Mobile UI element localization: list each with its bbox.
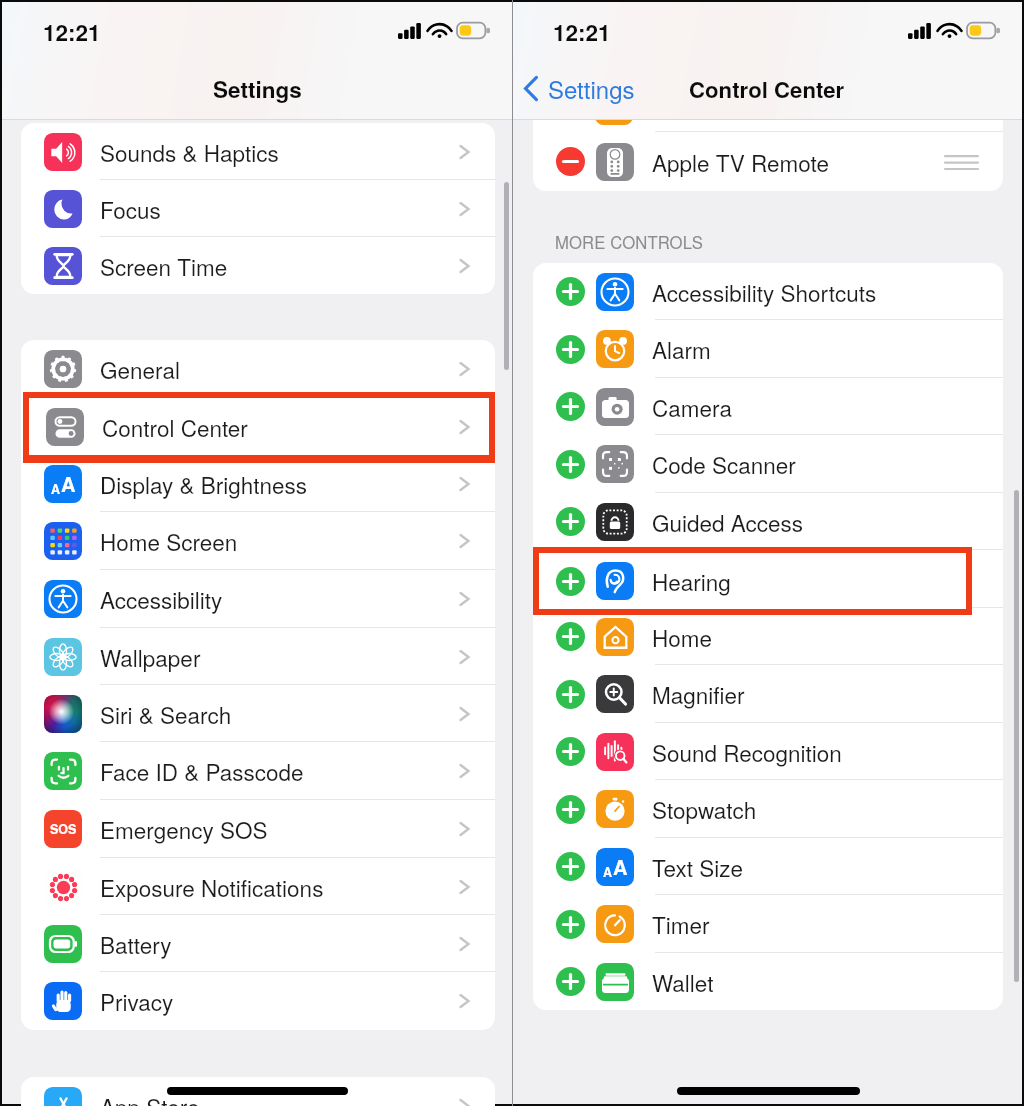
staticText: A — [603, 863, 613, 881]
button[interactable]: Exposure Notifications — [21, 858, 495, 915]
staticText: Settings — [548, 71, 635, 105]
button[interactable]: Add control — [533, 838, 1003, 895]
staticText: Control Center — [100, 411, 459, 443]
button[interactable]: Add control — [533, 435, 1003, 493]
staticText: Wallet — [652, 966, 983, 998]
staticText: Stopwatch — [652, 793, 983, 825]
staticText: Emergency SOS — [100, 813, 459, 845]
button[interactable]: Add control — [533, 953, 1003, 1010]
staticText: Text Size — [652, 851, 983, 883]
button[interactable]: Add control — [556, 910, 585, 939]
staticText: A — [51, 480, 61, 498]
staticText: Display & Brightness — [100, 468, 459, 500]
staticText: 12:21 — [43, 16, 101, 48]
button[interactable]: Add control — [533, 895, 1003, 953]
button[interactable]: Add control — [533, 547, 972, 615]
button[interactable]: Add control — [556, 277, 585, 306]
button[interactable]: Wallpaper — [21, 628, 495, 685]
button[interactable]: Add control — [533, 320, 1003, 378]
button[interactable]: Add control — [556, 795, 585, 824]
button[interactable]: Remove control — [556, 147, 585, 176]
staticText: Timer — [652, 908, 983, 940]
staticText: Privacy — [100, 985, 459, 1017]
button[interactable]: Reorder — [945, 155, 978, 169]
button[interactable]: Accessibility — [21, 570, 495, 628]
button[interactable]: Battery — [21, 915, 495, 972]
staticText: Alarm — [652, 333, 983, 365]
staticText: Home — [652, 621, 983, 653]
staticText: Home Screen — [100, 525, 459, 557]
staticText: Settings — [213, 73, 302, 105]
staticText: Guided Access — [652, 506, 983, 538]
button[interactable]: Add control — [556, 680, 585, 709]
staticText: Screen Time — [100, 250, 459, 282]
button[interactable]: Screen Time — [21, 237, 495, 294]
button[interactable]: Add control — [533, 608, 1003, 665]
button[interactable]: General — [21, 340, 495, 398]
button[interactable]: Privacy — [21, 972, 495, 1030]
button[interactable]: Add control — [533, 378, 1003, 435]
staticText: Code Scanner — [652, 448, 983, 480]
button[interactable]: Control Center — [23, 392, 495, 463]
staticText: Control Center — [102, 411, 459, 443]
staticText: General — [100, 353, 459, 385]
staticText: Accessibility — [100, 583, 459, 615]
button[interactable]: Add control — [556, 335, 585, 364]
staticText: Hearing — [652, 565, 731, 597]
button[interactable]: Sounds & Haptics — [21, 123, 495, 180]
button[interactable]: Focus — [21, 180, 495, 237]
button[interactable]: Add control — [556, 450, 585, 479]
button[interactable]: Add control — [533, 665, 1003, 723]
button[interactable]: Add control — [556, 507, 585, 536]
button[interactable]: Add control — [556, 392, 585, 421]
staticText: Wallpaper — [100, 641, 459, 673]
staticText: SOS — [50, 820, 77, 838]
button[interactable]: Add control — [556, 852, 585, 881]
button[interactable]: Add control — [533, 723, 1003, 780]
button[interactable]: SOS — [21, 800, 495, 858]
staticText: A — [61, 469, 76, 498]
staticText: 12:21 — [553, 16, 611, 48]
button[interactable]: Remove control — [533, 132, 1003, 191]
staticText: Exposure Notifications — [100, 871, 459, 903]
button[interactable]: App Store — [21, 1077, 495, 1106]
staticText: Face ID & Passcode — [100, 755, 459, 787]
button[interactable]: Add control — [556, 737, 585, 766]
staticText: Sounds & Haptics — [100, 136, 459, 168]
staticText: Control Center — [689, 73, 845, 105]
button[interactable]: Add control — [533, 263, 1003, 320]
button[interactable]: Add control — [533, 550, 1003, 608]
button[interactable]: Control Center — [21, 398, 495, 455]
button[interactable]: Siri & Search — [21, 685, 495, 742]
button[interactable]: Home Screen — [21, 512, 495, 570]
staticText: Focus — [100, 193, 459, 225]
staticText: A — [613, 852, 628, 881]
staticText: Hearing — [652, 563, 983, 595]
button[interactable]: Face ID & Passcode — [21, 742, 495, 800]
staticText: Magnifier — [652, 678, 983, 710]
staticText: App Store — [100, 1090, 459, 1106]
button[interactable]: Add control — [556, 622, 585, 651]
staticText: Camera — [652, 391, 983, 423]
button[interactable]: Add control — [533, 780, 1003, 838]
staticText: Siri & Search — [100, 698, 459, 730]
staticText: Accessibility Shortcuts — [652, 276, 983, 308]
staticText: Battery — [100, 928, 459, 960]
button[interactable]: Add control — [556, 565, 585, 594]
staticText: Apple TV Remote — [652, 146, 945, 178]
staticText: MORE CONTROLS — [555, 230, 703, 254]
staticText: Sound Recognition — [652, 736, 983, 768]
button[interactable]: Add control — [533, 493, 1003, 550]
button[interactable]: Add control — [556, 967, 585, 996]
button[interactable]: Back to Settings — [521, 71, 637, 105]
button[interactable]: Add control — [556, 567, 585, 596]
button[interactable]: A — [21, 455, 495, 512]
